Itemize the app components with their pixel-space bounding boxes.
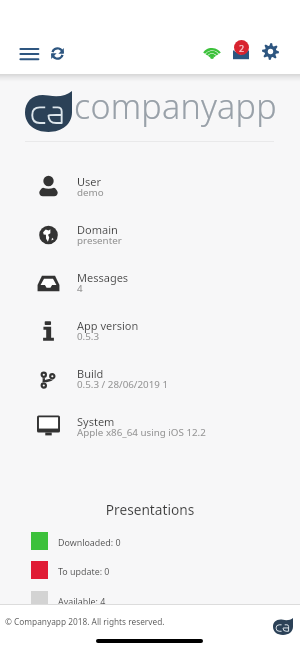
button[interactable]: Available: 4 — [0, 590, 300, 609]
button[interactable]: Settings — [262, 43, 279, 60]
staticText: 0.5.3 — [77, 330, 100, 343]
staticText: To update: 0 — [58, 565, 110, 577]
staticText: Messages — [77, 270, 129, 285]
button[interactable]: App version — [0, 307, 300, 355]
staticText: demo — [77, 186, 104, 199]
button[interactable]: Build — [0, 355, 300, 403]
staticText: presenter — [77, 234, 122, 247]
button[interactable]: Companyapp logo — [273, 618, 293, 635]
staticText: System — [77, 414, 115, 429]
staticText: Apple x86_64 using iOS 12.2 — [77, 426, 206, 439]
staticText: Domain — [77, 222, 118, 237]
button[interactable]: Messages — [0, 259, 300, 307]
button[interactable]: Domain — [0, 211, 300, 259]
button[interactable]: Menu — [17, 42, 41, 66]
button[interactable]: Wifi status — [202, 44, 222, 59]
button[interactable]: Messages — [233, 40, 249, 60]
staticText: Build — [77, 366, 104, 381]
button[interactable]: To update: 0 — [0, 560, 300, 579]
staticText: User — [77, 174, 102, 189]
staticText: Downloaded: 0 — [58, 536, 121, 548]
staticText: 2 — [239, 42, 245, 54]
button[interactable]: System — [0, 403, 300, 451]
staticText: © Companyapp 2018. All rights reserved. — [5, 616, 165, 627]
staticText: Available: 4 — [58, 595, 106, 607]
staticText: App version — [77, 318, 139, 333]
button[interactable]: Refresh — [50, 46, 65, 61]
staticText: Presentations — [0, 500, 300, 519]
staticText: 0.5.3 / 28/06/2019 1 — [77, 378, 169, 391]
button[interactable]: User — [0, 163, 300, 211]
staticText: companyapp — [74, 83, 277, 129]
button[interactable]: Downloaded: 0 — [0, 531, 300, 550]
staticText: 4 — [77, 282, 83, 295]
